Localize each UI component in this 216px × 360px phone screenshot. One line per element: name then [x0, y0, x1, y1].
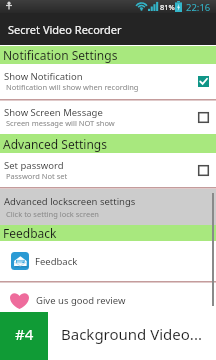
other: Unchecked — [198, 112, 209, 123]
staticText: Notification Settings — [3, 47, 118, 63]
button[interactable]: Show Notification — [0, 64, 216, 99]
staticText: 81% — [160, 2, 175, 12]
button[interactable]: Advanced lockscreen settings — [0, 189, 216, 225]
staticText: #4 — [15, 324, 34, 344]
staticText: Advanced Settings — [3, 136, 107, 152]
button[interactable]: Give us good review — [0, 283, 216, 317]
staticText: Feedback — [3, 225, 57, 241]
other: Checked — [198, 76, 209, 87]
staticText: Feedback — [35, 255, 78, 268]
staticText: Screen message will NOT show — [6, 118, 115, 128]
staticText: Set password — [4, 159, 64, 172]
staticText: Background Video... — [61, 324, 202, 344]
staticText: Show Notification — [4, 70, 83, 83]
staticText: Give us good review — [36, 294, 126, 307]
staticText: Secret Video Recorder — [8, 22, 122, 37]
staticText: Password Not set — [6, 171, 68, 181]
staticText: 22:16 — [186, 1, 211, 14]
other: Unchecked — [198, 165, 209, 176]
button[interactable]: Feedback — [0, 241, 216, 281]
staticText: Advanced lockscreen settings — [4, 195, 136, 208]
staticText: Click to setting lock screen — [6, 209, 99, 219]
button[interactable]: Show Screen Message — [0, 101, 216, 134]
staticText: Show Screen Message — [4, 106, 103, 119]
staticText: Notification will show when recording — [6, 82, 139, 92]
button[interactable]: Set password — [0, 153, 216, 187]
